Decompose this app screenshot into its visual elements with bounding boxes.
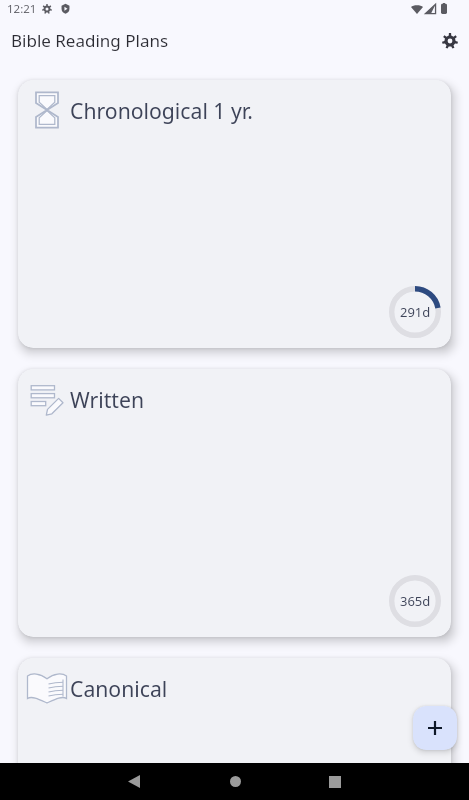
- button[interactable]: Add reading plan: [413, 706, 457, 750]
- button[interactable]: Written: [18, 369, 451, 637]
- button[interactable]: Canonical: [18, 658, 451, 800]
- staticText: 365d: [400, 592, 431, 610]
- button[interactable]: Settings: [433, 24, 467, 58]
- staticText: 291d: [400, 303, 431, 321]
- button[interactable]: Back: [110, 763, 158, 800]
- staticText: Written: [70, 385, 145, 414]
- staticText: Bible Reading Plans: [11, 29, 169, 52]
- staticText: 12:21: [7, 1, 37, 17]
- staticText: Canonical: [70, 674, 168, 703]
- button[interactable]: Chronological 1 yr.: [18, 80, 451, 348]
- button[interactable]: Recent apps: [311, 763, 359, 800]
- staticText: Chronological 1 yr.: [70, 96, 253, 125]
- button[interactable]: Home: [211, 763, 259, 800]
